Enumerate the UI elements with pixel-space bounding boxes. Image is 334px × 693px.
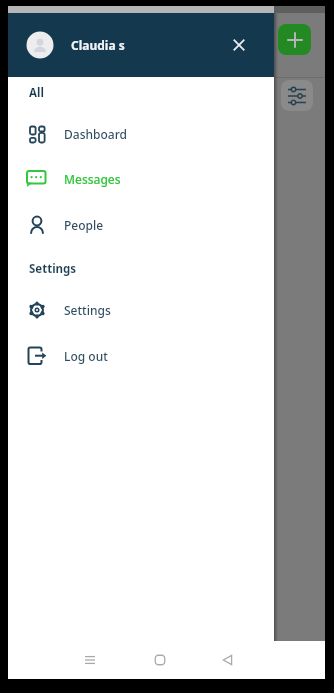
staticText: Settings — [64, 302, 111, 318]
staticText: Settings — [29, 261, 77, 277]
button[interactable]: Messages — [25, 163, 265, 195]
staticText: Log out — [64, 348, 108, 364]
button[interactable]: Log out — [25, 340, 265, 372]
staticText: All — [29, 85, 44, 101]
button[interactable] — [77, 647, 103, 673]
button[interactable] — [215, 647, 241, 673]
button[interactable] — [147, 647, 173, 673]
staticText: Dashboard — [64, 126, 127, 142]
button[interactable]: Settings — [25, 294, 265, 326]
button[interactable]: People — [25, 209, 265, 241]
button[interactable]: Dashboard — [25, 118, 265, 150]
button[interactable] — [278, 24, 311, 55]
staticText: People — [64, 217, 104, 233]
staticText: Claudia s — [71, 37, 125, 53]
button[interactable] — [226, 32, 252, 58]
staticText: Messages — [64, 171, 121, 187]
button[interactable] — [281, 80, 313, 111]
